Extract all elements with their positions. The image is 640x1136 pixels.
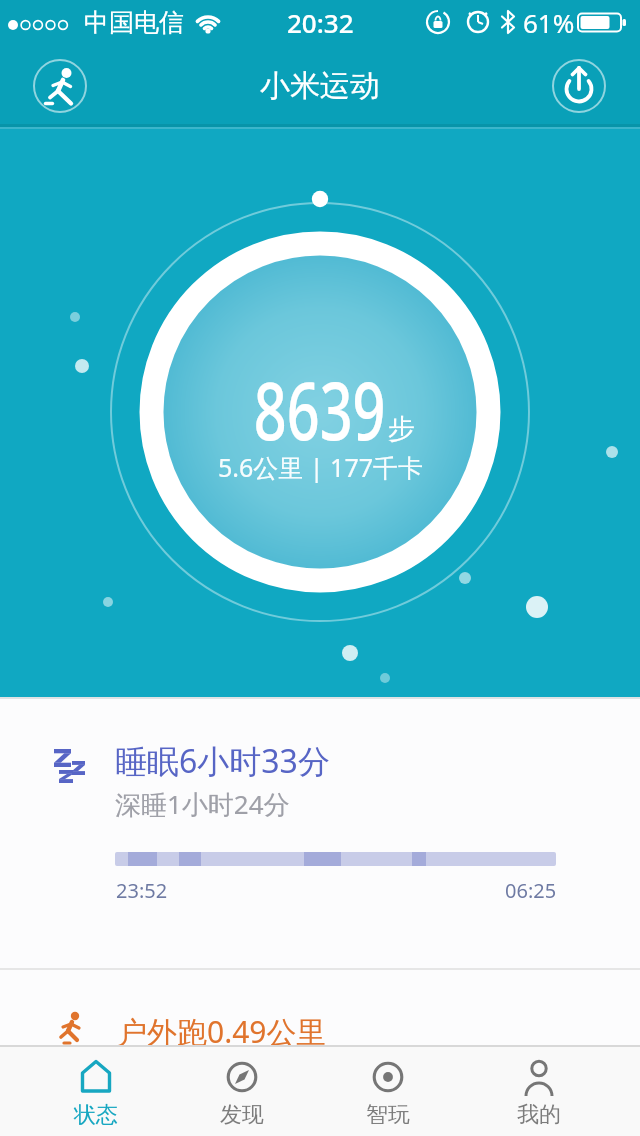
staticText: 5.6公里 | 177千卡 — [218, 450, 423, 484]
staticText: 户外跑0.49公里 — [117, 1011, 327, 1045]
staticText: 中国电信 — [84, 7, 184, 38]
staticText: 06:25 — [505, 877, 557, 904]
staticText: 步 — [388, 412, 415, 446]
staticText: 发现 — [220, 1101, 264, 1129]
staticText: 61% — [523, 5, 575, 40]
staticText: 我的 — [517, 1101, 561, 1129]
button[interactable]: 我的 — [497, 1047, 581, 1136]
staticText: 智玩 — [366, 1101, 410, 1129]
button[interactable]: 智玩 — [346, 1047, 430, 1136]
button[interactable] — [552, 59, 606, 113]
staticText: 20:32 — [287, 5, 354, 40]
staticText: 睡眠6小时33分 — [115, 739, 330, 783]
staticText: 状态 — [74, 1101, 118, 1129]
button[interactable]: 睡眠6小时33分 — [0, 697, 640, 970]
button[interactable]: 发现 — [200, 1047, 284, 1136]
button[interactable]: 户外跑0.49公里 — [0, 970, 640, 1045]
staticText: 23:52 — [116, 877, 168, 904]
button[interactable] — [33, 59, 87, 113]
staticText: 小米运动 — [260, 67, 380, 105]
button[interactable]: 状态 — [54, 1047, 138, 1136]
staticText: 深睡1小时24分 — [115, 786, 290, 822]
staticText: 8639 — [254, 354, 386, 463]
